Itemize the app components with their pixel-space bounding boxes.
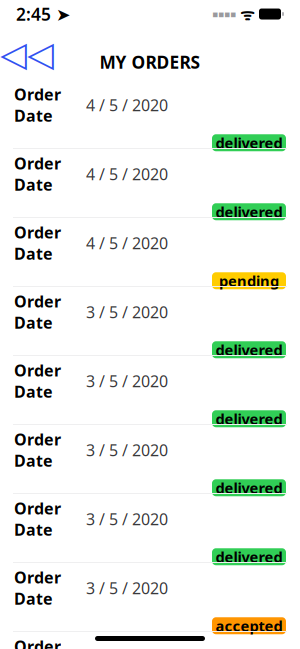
staticText: 3 / 5 / 2020: [86, 577, 168, 599]
staticText: ◁◁: [0, 34, 54, 74]
staticText: 3 / 5 / 2020: [86, 508, 168, 530]
staticText: accepted: [215, 616, 282, 635]
button[interactable]: Order Date: [0, 80, 300, 149]
staticText: Order Date: [14, 222, 61, 264]
staticText: Order Date: [14, 567, 61, 609]
staticText: Order Date: [14, 360, 61, 402]
staticText: 4 / 5 / 2020: [86, 232, 168, 254]
staticText: delivered: [215, 409, 282, 428]
staticText: Order Date: [14, 429, 61, 471]
staticText: 3 / 5 / 2020: [86, 370, 168, 392]
staticText: Order Date: [14, 84, 61, 126]
button[interactable]: Order Date: [0, 287, 300, 356]
button[interactable]: Order Date: [0, 425, 300, 494]
button[interactable]: Order Date: [0, 218, 300, 287]
button[interactable]: Order Date: [0, 563, 300, 632]
staticText: Order Date: [14, 153, 61, 195]
button[interactable]: Order Date: [0, 632, 300, 649]
button[interactable]: Order Date: [0, 149, 300, 218]
staticText: delivered: [215, 547, 282, 566]
staticText: 2:45 ➤: [16, 2, 71, 25]
staticText: Order Date: [14, 291, 61, 333]
button[interactable]: Order Date: [0, 494, 300, 563]
staticText: MY ORDERS: [99, 50, 200, 73]
staticText: ᯤ: [236, 3, 255, 25]
staticText: 4 / 5 / 2020: [86, 163, 168, 185]
staticText: 4 / 5 / 2020: [86, 94, 168, 116]
staticText: delivered: [215, 478, 282, 497]
staticText: delivered: [215, 202, 282, 221]
button[interactable]: Order Date: [0, 356, 300, 425]
staticText: 3 / 5 / 2020: [86, 439, 168, 461]
staticText: delivered: [215, 133, 282, 152]
staticText: Order Date: [14, 498, 61, 540]
button[interactable]: Back: [0, 34, 54, 74]
staticText: delivered: [215, 340, 282, 359]
staticText: pending: [219, 271, 279, 290]
staticText: 3 / 5 / 2020: [86, 301, 168, 323]
staticText: ▪▪▪▪: [212, 9, 236, 19]
staticText: Order Date: [14, 636, 61, 649]
